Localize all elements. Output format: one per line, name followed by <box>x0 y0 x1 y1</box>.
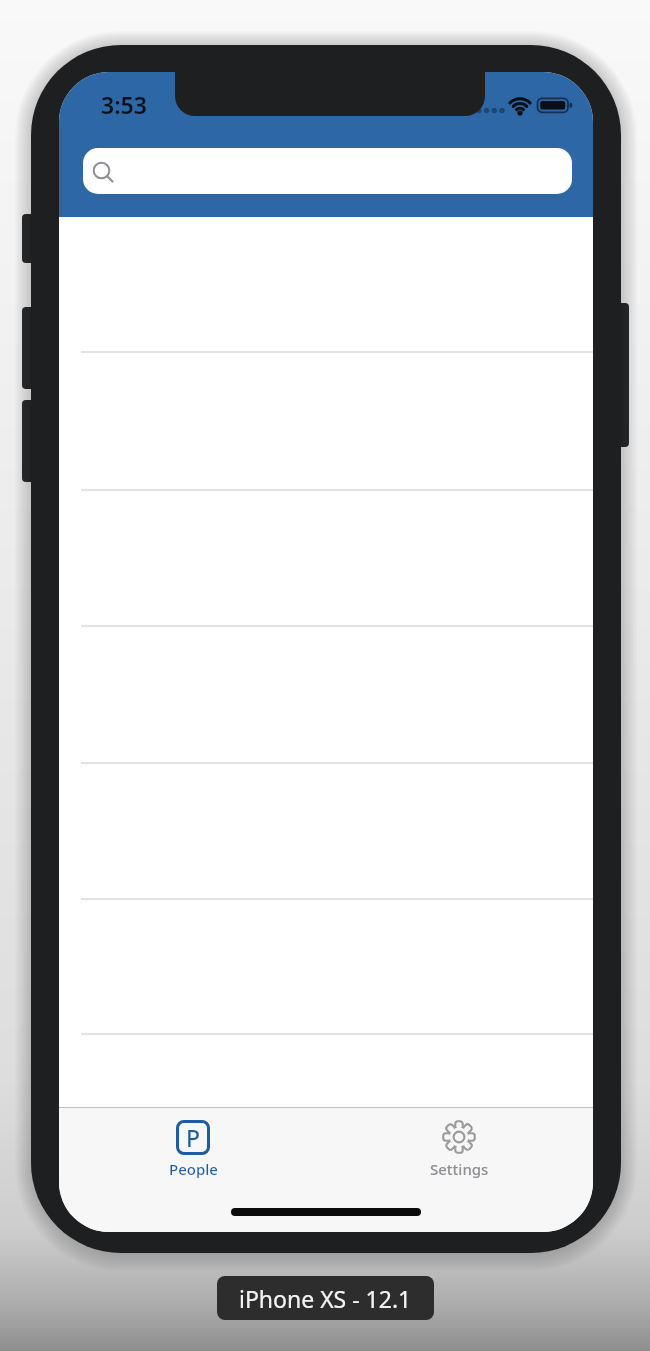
button[interactable] <box>83 148 572 194</box>
staticText: 3:53 <box>101 89 147 120</box>
staticText: People <box>169 1159 218 1179</box>
staticText: P <box>186 1122 201 1153</box>
button[interactable] <box>409 1112 509 1182</box>
staticText: iPhone XS - 12.1 <box>239 1283 412 1314</box>
button[interactable]: P <box>143 1112 243 1182</box>
staticText: Settings <box>430 1159 489 1179</box>
